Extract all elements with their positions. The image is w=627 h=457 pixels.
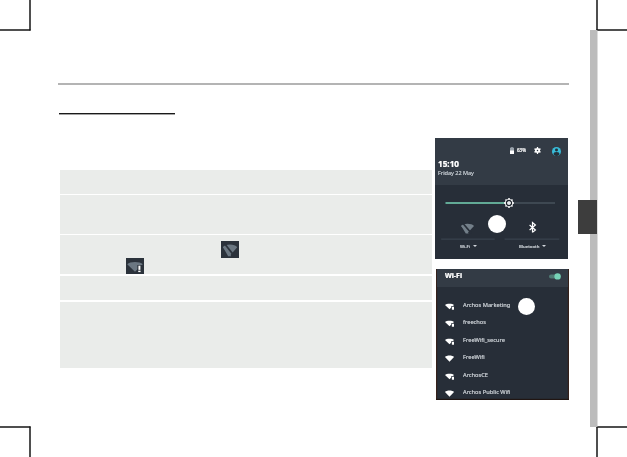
staticText: Friday 22 May — [438, 169, 474, 176]
staticText: 63% — [517, 147, 526, 153]
button[interactable]: Bluetooth — [519, 243, 548, 249]
button[interactable]: User account — [552, 147, 561, 156]
button[interactable]: Bluetooth — [529, 222, 536, 233]
staticText: ArchosCE — [463, 371, 489, 379]
staticText: Archos Marketing — [463, 301, 511, 309]
button[interactable]: Wi-Fi off — [461, 223, 474, 233]
button[interactable]: FreeWifi_secure — [436, 333, 567, 347]
staticText: Archos Public Wifi — [463, 388, 511, 396]
button[interactable]: freechos — [436, 315, 567, 329]
button[interactable]: Archos Public Wifi — [436, 385, 567, 399]
button[interactable]: Wi-Fi toggle — [547, 271, 561, 284]
staticText: Wi-Fi — [460, 243, 471, 249]
button[interactable]: Settings — [534, 147, 541, 154]
staticText: FreeWifi — [463, 353, 485, 361]
staticText: FreeWifi_secure — [463, 336, 505, 344]
staticText: Wi-Fi — [445, 271, 463, 281]
staticText: Bluetooth — [519, 243, 540, 249]
button[interactable]: ArchosCE — [436, 368, 567, 382]
staticText: 15:10 — [438, 158, 460, 169]
staticText: freechos — [463, 318, 487, 326]
button[interactable]: FreeWifi — [436, 350, 567, 364]
button[interactable]: Wi-Fi — [460, 243, 479, 249]
button[interactable]: Archos Marketing — [436, 298, 567, 312]
